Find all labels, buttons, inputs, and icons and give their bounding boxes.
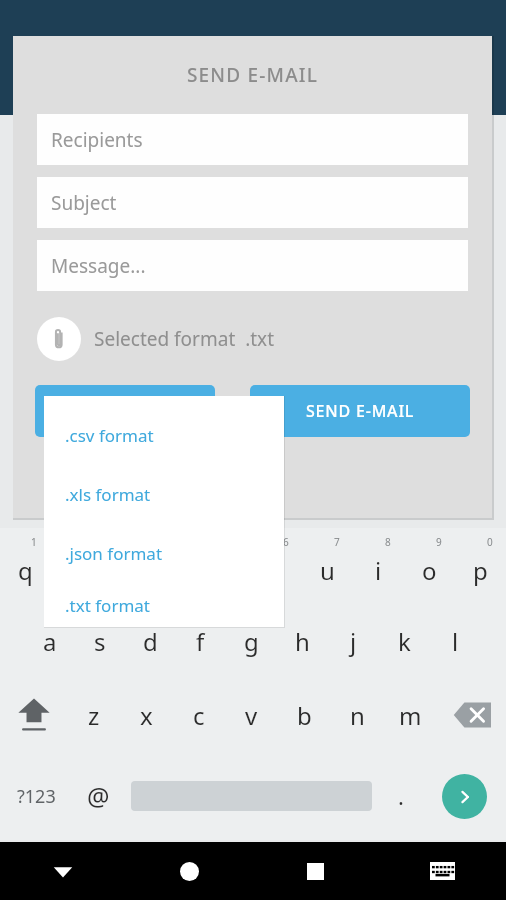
button[interactable]: 4	[150, 534, 200, 600]
button[interactable]: j	[328, 608, 379, 674]
button[interactable]: Home	[126, 842, 252, 900]
button[interactable]: .txt format	[44, 583, 284, 627]
staticText: 6	[283, 535, 289, 549]
staticText: c	[193, 699, 205, 732]
button[interactable]: v	[225, 682, 278, 748]
staticText: Subject	[51, 190, 117, 216]
staticText: .xls format	[65, 483, 151, 506]
staticText: .csv format	[65, 424, 154, 447]
staticText: w	[66, 554, 85, 587]
button[interactable]: g	[226, 608, 277, 674]
button[interactable]: 1	[0, 534, 50, 600]
button[interactable]: Message...	[37, 240, 468, 291]
button[interactable]: @	[73, 762, 123, 830]
button[interactable]: m	[384, 682, 437, 748]
button[interactable]: n	[331, 682, 384, 748]
button[interactable]: b	[278, 682, 331, 748]
button[interactable]: d	[125, 608, 175, 674]
staticText: n	[350, 699, 365, 732]
staticText: p	[473, 554, 488, 587]
staticText: .json format	[65, 542, 163, 565]
staticText: f	[196, 625, 205, 658]
staticText: Recipients	[51, 127, 143, 153]
button[interactable]: ?123	[0, 762, 73, 830]
button[interactable]: z	[68, 682, 120, 748]
staticText: k	[398, 625, 411, 658]
button[interactable]: 7	[302, 534, 353, 600]
button[interactable]: 8	[353, 534, 404, 600]
button[interactable]: f	[175, 608, 226, 674]
button[interactable]: Enter	[442, 774, 487, 819]
button[interactable]: .json format	[44, 524, 284, 583]
staticText: 9	[436, 535, 442, 549]
button[interactable]: Back	[0, 842, 126, 900]
staticText: a	[43, 625, 57, 658]
staticText: x	[140, 699, 153, 732]
button[interactable]: .xls format	[44, 465, 284, 524]
button[interactable]: Subject	[37, 177, 468, 228]
staticText: SEND E-MAIL	[306, 400, 415, 422]
staticText: v	[245, 699, 258, 732]
staticText: o	[422, 554, 437, 587]
staticText: .txt format	[65, 594, 150, 617]
button[interactable]: Attach file	[37, 317, 81, 361]
button[interactable]: CANCEL	[35, 385, 215, 437]
staticText: 1	[31, 535, 37, 549]
button[interactable]: k	[379, 608, 430, 674]
staticText: m	[399, 699, 422, 732]
button[interactable]: 9	[404, 534, 455, 600]
button[interactable]: 0	[455, 534, 506, 600]
button[interactable]: l	[430, 608, 481, 674]
staticText: z	[88, 699, 100, 732]
button[interactable]: Switch keyboard	[379, 842, 506, 900]
button[interactable]: .	[379, 762, 423, 830]
button[interactable]: h	[277, 608, 328, 674]
staticText: b	[297, 699, 312, 732]
staticText: Selected format .txt	[94, 326, 274, 352]
staticText: g	[244, 625, 259, 658]
button[interactable]: 3	[100, 534, 150, 600]
button[interactable]: SEND E-MAIL	[250, 385, 470, 437]
staticText: e	[118, 554, 132, 587]
staticText: j	[350, 625, 357, 658]
staticText: 0	[487, 535, 493, 549]
staticText: l	[452, 625, 459, 658]
staticText: @	[87, 779, 110, 813]
staticText: SEND E-MAIL	[13, 62, 492, 88]
staticText: ?123	[17, 784, 56, 809]
staticText: .	[398, 781, 404, 811]
button[interactable]: Shift	[0, 682, 68, 748]
button[interactable]: Recipients	[37, 114, 468, 165]
staticText: d	[143, 625, 158, 658]
staticText: i	[375, 554, 382, 587]
staticText: h	[295, 625, 310, 658]
staticText: q	[18, 554, 33, 587]
button[interactable]: 6	[251, 534, 302, 600]
button[interactable]: .csv format	[44, 406, 284, 465]
staticText: Message...	[51, 253, 146, 279]
staticText: u	[320, 554, 335, 587]
staticText: s	[94, 625, 106, 658]
button[interactable]: c	[172, 682, 225, 748]
button[interactable]: a	[25, 608, 75, 674]
button[interactable]: Recent apps	[252, 842, 379, 900]
button[interactable]: x	[120, 682, 172, 748]
staticText: 7	[334, 535, 340, 549]
button[interactable]: 2	[50, 534, 100, 600]
staticText: 8	[385, 535, 391, 549]
button[interactable]: s	[75, 608, 125, 674]
button[interactable]: Backspace	[437, 682, 506, 748]
